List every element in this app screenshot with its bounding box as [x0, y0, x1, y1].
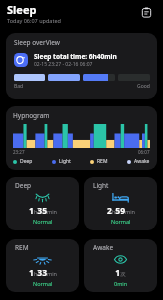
button[interactable]: Sleep notes: [135, 1, 157, 23]
button[interactable]: REM: [6, 239, 79, 292]
staticText: Light: [93, 181, 109, 190]
staticText: 23:27: [13, 149, 25, 155]
staticText: 02-15 23:27 - 02-16 06:07: [34, 61, 93, 68]
button[interactable]: Deep: [6, 177, 79, 230]
button[interactable]: Light: [84, 177, 157, 230]
staticText: Sleep overView: [14, 38, 60, 47]
staticText: Hypnogram: [13, 111, 50, 120]
staticText: 0min: [114, 280, 128, 287]
button[interactable]: Hypnogram: [6, 106, 157, 170]
staticText: REM: [97, 158, 108, 165]
button[interactable]: Sleep overView: [6, 33, 157, 99]
staticText: Normal: [111, 218, 131, 225]
staticText: Awake: [93, 243, 114, 252]
staticText: 06:07: [138, 149, 150, 155]
staticText: Sleep: [7, 2, 37, 17]
staticText: Awake: [134, 158, 150, 165]
button[interactable]: Awake: [84, 239, 157, 292]
staticText: REM: [15, 243, 29, 252]
staticText: Normal: [33, 280, 53, 287]
staticText: Today 06:07 updated: [7, 17, 61, 24]
staticText: Normal: [33, 218, 53, 225]
staticText: Good: [137, 83, 150, 90]
staticText: Sleep total time: 6h40min: [34, 52, 117, 61]
staticText: 2h59min: [107, 205, 135, 217]
staticText: Bad: [14, 83, 24, 90]
staticText: 1h33min: [29, 267, 57, 279]
staticText: Light: [59, 158, 71, 165]
staticText: 1次: [115, 267, 126, 279]
staticText: Deep: [20, 158, 33, 165]
staticText: Deep: [15, 181, 32, 190]
staticText: 1h35min: [29, 205, 57, 217]
